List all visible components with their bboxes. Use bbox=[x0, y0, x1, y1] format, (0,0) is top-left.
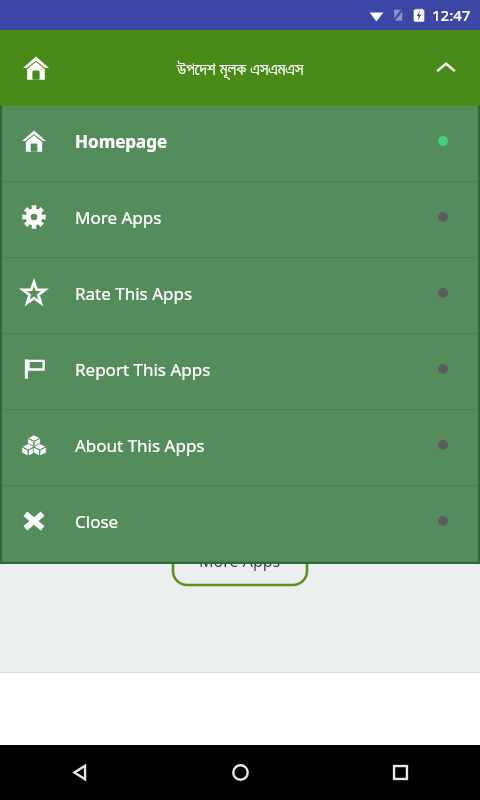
button[interactable]: More Apps bbox=[0, 182, 480, 258]
staticText: Report This Apps bbox=[75, 358, 211, 381]
staticText: More Apps bbox=[199, 550, 281, 572]
button[interactable]: Collapse menu bbox=[426, 48, 466, 88]
staticText: Rate This Apps bbox=[75, 282, 193, 305]
staticText: Close bbox=[75, 510, 119, 533]
button[interactable]: Homepage bbox=[0, 106, 480, 182]
button[interactable]: Close bbox=[0, 486, 480, 562]
staticText: উপদেশ মূলক এসএমএস bbox=[177, 57, 304, 80]
button[interactable]: Home bbox=[160, 745, 320, 800]
staticText: About This Apps bbox=[75, 434, 205, 457]
staticText: More Apps bbox=[75, 206, 162, 229]
button[interactable]: Recents bbox=[320, 745, 480, 800]
staticText: 12:47 bbox=[432, 5, 471, 25]
button[interactable]: Home bbox=[16, 48, 56, 88]
button[interactable]: Report This Apps bbox=[0, 334, 480, 410]
button[interactable]: Rate This Apps bbox=[0, 258, 480, 334]
button[interactable]: More Apps bbox=[173, 537, 307, 585]
button[interactable]: About This Apps bbox=[0, 410, 480, 486]
staticText: Homepage bbox=[75, 130, 168, 153]
button[interactable]: Back bbox=[0, 745, 160, 800]
